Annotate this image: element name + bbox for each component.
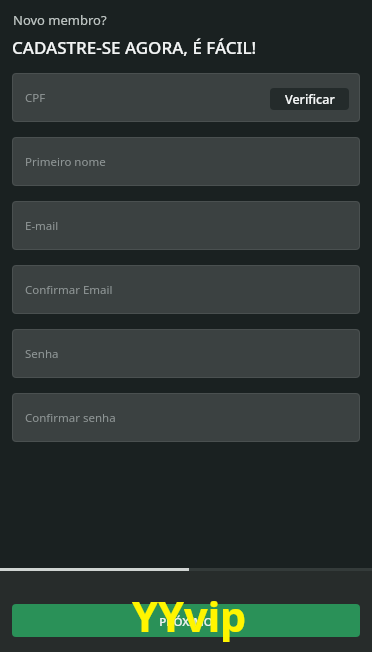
staticText: PRÓXIMO [159,614,213,630]
staticText: Novo membro? [13,11,107,29]
staticText: CADASTRE-SE AGORA, É FÁCIL! [12,36,257,59]
staticText: CPF [25,90,46,106]
button[interactable]: Confirmar senha [12,393,360,442]
staticText: Primeiro nome [25,154,106,170]
staticText: Verificar [285,91,335,108]
button[interactable]: Primeiro nome [12,137,360,186]
button[interactable]: PRÓXIMO [12,604,360,637]
staticText: Senha [25,346,59,362]
button[interactable]: Senha [12,329,360,378]
button[interactable]: Confirmar Email [12,265,360,314]
staticText: Confirmar Email [25,282,113,298]
button[interactable]: E-mail [12,201,360,250]
staticText: E-mail [25,218,59,234]
staticText: YYvip [132,588,247,645]
staticText: Confirmar senha [25,410,116,426]
button[interactable]: CPF [12,73,360,122]
button[interactable]: Verificar [270,88,349,110]
